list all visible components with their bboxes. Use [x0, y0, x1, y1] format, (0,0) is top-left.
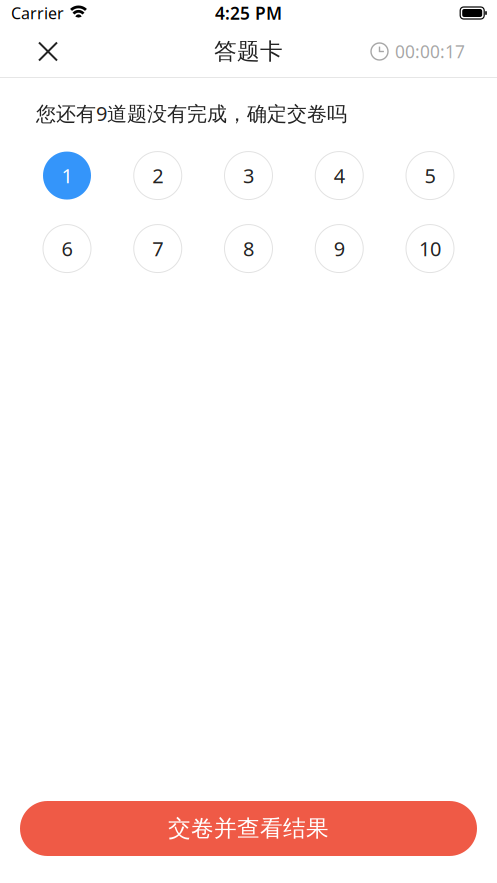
staticText: 您还有9道题没有完成，确定交卷吗 [36, 100, 347, 127]
staticText: 1 [61, 162, 72, 189]
staticText: 7 [152, 235, 163, 262]
staticText: 6 [61, 235, 72, 262]
staticText: 10 [419, 235, 441, 262]
button[interactable]: 7 [134, 225, 182, 273]
button[interactable]: 5 [406, 152, 454, 200]
staticText: 8 [243, 235, 254, 262]
button[interactable]: 10 [406, 225, 454, 273]
staticText: 4 [334, 162, 345, 189]
button[interactable]: Close [26, 29, 70, 73]
staticText: 5 [424, 162, 435, 189]
button[interactable]: 4 [315, 152, 363, 200]
button[interactable]: 1 [43, 152, 91, 200]
button[interactable]: 交卷并查看结果 [20, 801, 477, 856]
button[interactable]: 3 [224, 152, 272, 200]
staticText: 9 [334, 235, 345, 262]
staticText: 3 [243, 162, 254, 189]
button[interactable]: 6 [43, 225, 91, 273]
button[interactable]: 9 [315, 225, 363, 273]
staticText: Carrier [11, 2, 64, 24]
staticText: 2 [152, 162, 163, 189]
button[interactable]: 2 [134, 152, 182, 200]
staticText: 4:25 PM [215, 1, 282, 24]
button[interactable]: 8 [224, 225, 272, 273]
staticText: 00:00:17 [395, 40, 465, 63]
staticText: 交卷并查看结果 [168, 815, 329, 842]
staticText: 答题卡 [214, 38, 283, 65]
